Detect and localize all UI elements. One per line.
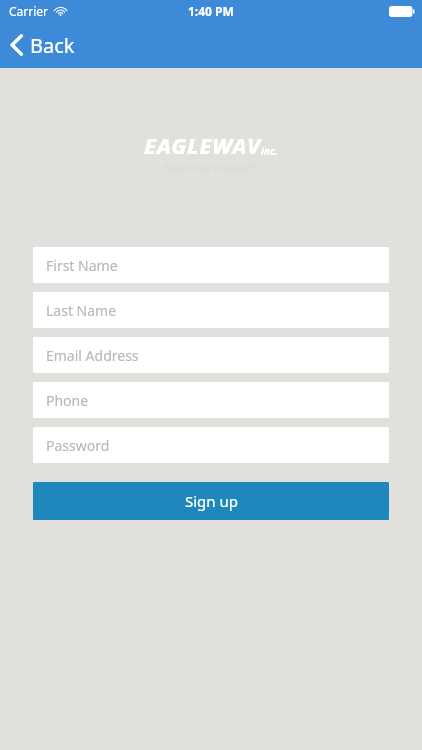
button[interactable]: Email Address	[33, 337, 389, 373]
staticText: Carrier	[9, 3, 49, 19]
staticText: Last Name	[46, 301, 117, 320]
staticText: Phone	[46, 391, 89, 410]
staticText: Sign up	[185, 491, 238, 511]
staticText: First Name	[46, 256, 118, 275]
button[interactable]: Sign up	[33, 482, 389, 520]
staticText: Back	[30, 32, 75, 59]
button[interactable]: Phone	[33, 382, 389, 418]
staticText: 1:40 PM	[188, 3, 234, 19]
staticText: EAGLEWAV	[144, 130, 261, 160]
button[interactable]: Last Name	[33, 292, 389, 328]
staticText: inc.	[261, 144, 278, 158]
button[interactable]: Back	[0, 22, 89, 68]
button[interactable]: First Name	[33, 247, 389, 283]
staticText: Password	[46, 436, 110, 455]
staticText: Email Address	[46, 346, 139, 365]
button[interactable]: Password	[33, 427, 389, 463]
